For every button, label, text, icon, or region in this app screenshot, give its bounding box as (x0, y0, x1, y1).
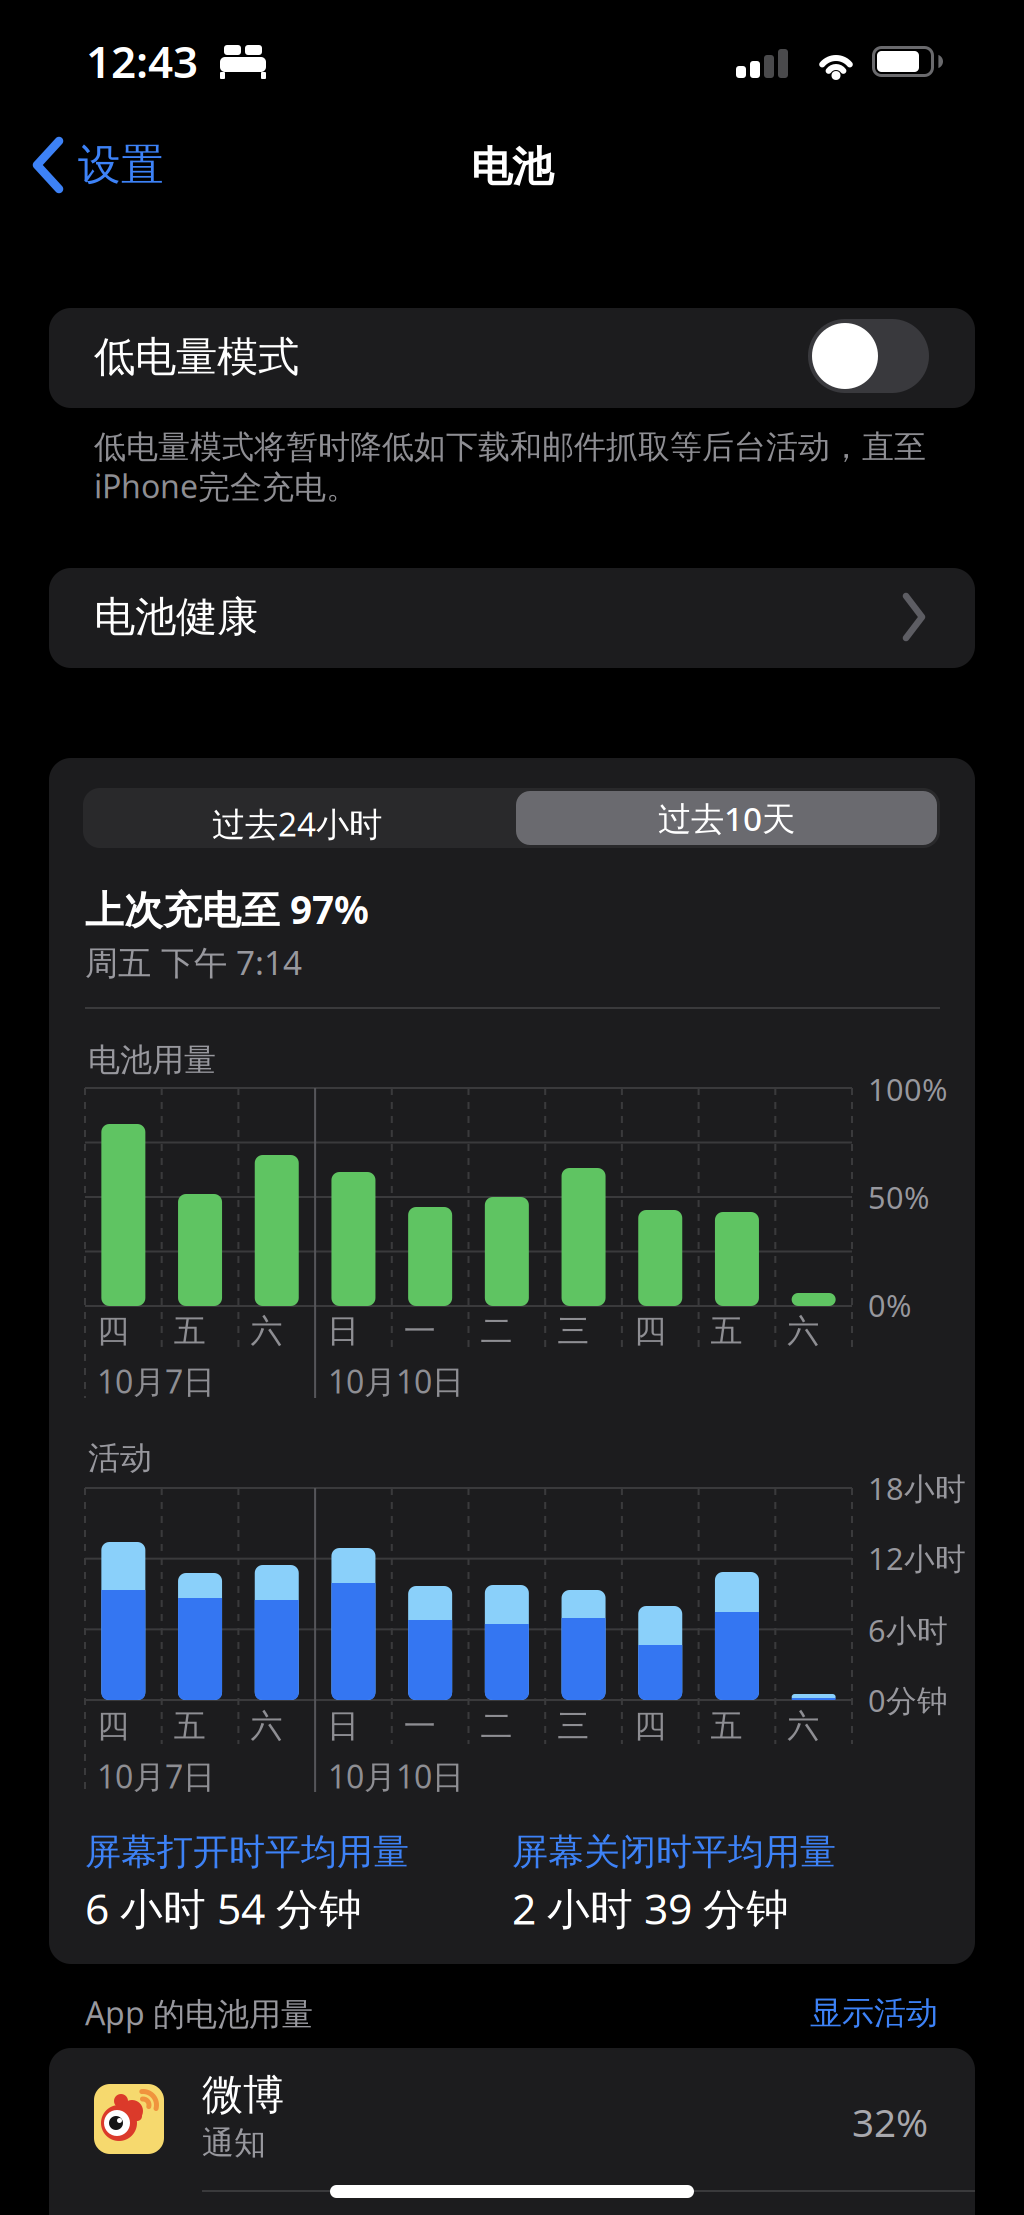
staticText: 四 (97, 1311, 129, 1351)
staticText: 6 小时 54 分钟 (85, 1880, 362, 1936)
staticText: iPhone完全充电。 (94, 465, 358, 507)
staticText: 五 (174, 1706, 206, 1746)
staticText: 三 (557, 1706, 589, 1746)
button[interactable]: 显示活动 (338, 1990, 938, 2036)
staticText: App 的电池用量 (85, 1992, 313, 2034)
staticText: 10月10日 (328, 1360, 464, 1402)
staticText: 四 (634, 1706, 666, 1746)
button[interactable]: 过去10天 (516, 791, 937, 845)
staticText: 6小时 (868, 1610, 948, 1650)
staticText: 日 (327, 1706, 359, 1746)
staticText: 电池健康 (94, 592, 258, 642)
staticText: 五 (174, 1311, 206, 1351)
button[interactable]: 设置 (30, 134, 200, 196)
staticText: 二 (480, 1311, 512, 1351)
staticText: 低电量模式 (94, 332, 299, 382)
staticText: 过去24小时 (212, 801, 382, 846)
staticText: 2 小时 39 分钟 (512, 1880, 789, 1936)
staticText: 通知 (202, 2123, 266, 2163)
button[interactable]: 微博 (49, 2048, 975, 2191)
staticText: 显示活动 (810, 1993, 938, 2033)
staticText: 五 (711, 1706, 743, 1746)
staticText: 日 (327, 1311, 359, 1351)
staticText: 32% (852, 2096, 928, 2148)
staticText: 周五 下午 7:14 (85, 940, 302, 984)
staticText: 四 (634, 1311, 666, 1351)
staticText: 一 (404, 1706, 436, 1746)
staticText: 电池用量 (88, 1040, 216, 1080)
staticText: 六 (250, 1706, 282, 1746)
staticText: 活动 (88, 1438, 152, 1478)
staticText: 屏幕关闭时平均用量 (512, 1830, 836, 1874)
staticText: 0% (868, 1285, 911, 1325)
staticText: 12小时 (868, 1538, 966, 1578)
staticText: 二 (480, 1706, 512, 1746)
staticText: 五 (711, 1311, 743, 1351)
staticText: 10月7日 (97, 1755, 215, 1797)
staticText: 12:43 (86, 32, 198, 90)
staticText: 六 (787, 1706, 819, 1746)
staticText: 10月7日 (97, 1360, 215, 1402)
staticText: 设置 (78, 139, 164, 191)
button[interactable]: 过去24小时 (83, 788, 511, 848)
staticText: 低电量模式将暂时降低如下载和邮件抓取等后台活动，直至 (94, 427, 926, 467)
staticText: 50% (868, 1177, 929, 1217)
staticText: 0分钟 (868, 1680, 948, 1720)
button[interactable]: 电池健康 (49, 568, 975, 668)
staticText: 10月10日 (328, 1755, 464, 1797)
staticText: 三 (557, 1311, 589, 1351)
staticText: 100% (868, 1069, 947, 1109)
button[interactable]: 低电量模式 (808, 319, 929, 393)
staticText: 屏幕打开时平均用量 (85, 1830, 409, 1874)
staticText: 六 (787, 1311, 819, 1351)
staticText: 18小时 (868, 1468, 966, 1508)
staticText: 电池 (471, 142, 553, 192)
staticText: 过去10天 (658, 796, 795, 840)
staticText: 一 (404, 1311, 436, 1351)
staticText: 微博 (202, 2070, 284, 2120)
staticText: 四 (97, 1706, 129, 1746)
staticText: 上次充电至 97% (85, 883, 369, 935)
staticText: 六 (250, 1311, 282, 1351)
